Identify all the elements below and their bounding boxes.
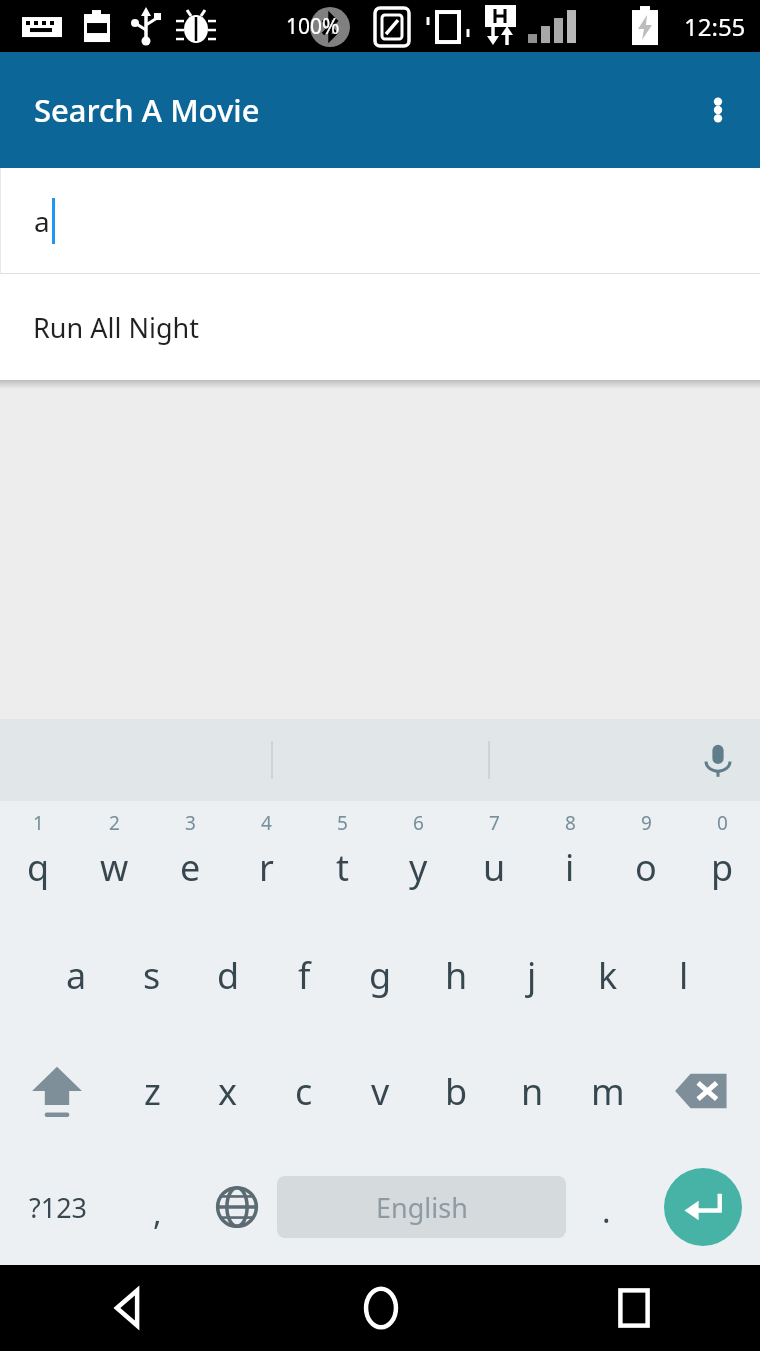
staticText: 6 (413, 810, 424, 836)
staticText: x (218, 1067, 238, 1116)
staticText: e (180, 843, 201, 892)
staticText: t (336, 843, 349, 892)
staticText: Search A Movie (34, 89, 260, 131)
button[interactable]: , (117, 1149, 197, 1265)
button[interactable]: ?123 (0, 1149, 117, 1265)
staticText: n (521, 1067, 544, 1116)
staticText: s (143, 951, 161, 1000)
staticText: a (66, 951, 87, 1000)
button[interactable]: Run All Night (0, 274, 760, 380)
staticText: l (679, 951, 689, 1000)
button[interactable]: English (277, 1176, 566, 1238)
button[interactable]: . (566, 1149, 646, 1265)
button[interactable]: k (570, 917, 646, 1033)
staticText: c (295, 1067, 313, 1116)
staticText: o (635, 843, 657, 892)
button[interactable]: d (190, 917, 266, 1033)
staticText: b (445, 1067, 468, 1116)
button[interactable]: g (342, 917, 418, 1033)
button[interactable]: j (494, 917, 570, 1033)
button[interactable]: m (570, 1033, 646, 1149)
staticText: f (298, 951, 311, 1000)
button[interactable]: Enter (664, 1168, 742, 1246)
button[interactable]: Shift (0, 1033, 114, 1149)
button[interactable]: 5 (304, 801, 380, 917)
staticText: v (371, 1067, 390, 1116)
button[interactable]: 3 (152, 801, 228, 917)
staticText: a (34, 202, 50, 240)
staticText: . (602, 1189, 611, 1233)
staticText: , (153, 1191, 162, 1235)
staticText: p (711, 843, 734, 892)
staticText: q (27, 843, 50, 892)
staticText: English (376, 1189, 468, 1226)
button[interactable]: a (0, 168, 760, 274)
staticText: 12:55 (684, 10, 746, 43)
staticText: z (144, 1067, 161, 1116)
button[interactable]: n (494, 1033, 570, 1149)
button[interactable]: c (266, 1033, 342, 1149)
button[interactable]: 4 (228, 801, 304, 917)
button[interactable]: 0 (684, 801, 760, 917)
button[interactable]: 7 (456, 801, 532, 917)
button[interactable]: s (114, 917, 190, 1033)
staticText: 5 (337, 810, 348, 836)
button[interactable]: 1 (0, 801, 76, 917)
button[interactable]: v (342, 1033, 418, 1149)
button[interactable]: f (266, 917, 342, 1033)
staticText: m (591, 1067, 625, 1116)
staticText: ?123 (29, 1189, 88, 1226)
button[interactable]: Home (254, 1265, 507, 1351)
staticText: 7 (489, 810, 500, 836)
button[interactable]: x (190, 1033, 266, 1149)
button[interactable]: 8 (532, 801, 608, 917)
button[interactable]: 2 (76, 801, 152, 917)
staticText: h (445, 951, 468, 1000)
staticText: 9 (641, 810, 652, 836)
staticText: 1 (33, 810, 44, 836)
staticText: 2 (109, 810, 120, 836)
staticText: g (369, 951, 392, 1000)
staticText: k (598, 951, 618, 1000)
button[interactable]: Voice input (690, 732, 746, 788)
staticText: Run All Night (33, 309, 199, 346)
button[interactable]: 6 (380, 801, 456, 917)
button[interactable]: Recent apps (507, 1265, 760, 1351)
staticText: u (483, 843, 506, 892)
button[interactable]: Back (0, 1265, 254, 1351)
button[interactable]: Backspace (646, 1033, 760, 1149)
staticText: i (565, 843, 575, 892)
staticText: w (100, 843, 129, 892)
button[interactable]: l (646, 917, 722, 1033)
button[interactable]: 9 (608, 801, 684, 917)
staticText: d (217, 951, 240, 1000)
staticText: r (259, 843, 274, 892)
button[interactable]: Change language (197, 1149, 277, 1265)
staticText: 0 (717, 810, 728, 836)
staticText: j (527, 951, 537, 1000)
button[interactable]: a (38, 917, 114, 1033)
button[interactable]: b (418, 1033, 494, 1149)
staticText: 100% (286, 12, 340, 41)
staticText: 8 (565, 810, 576, 836)
button[interactable]: More options (686, 78, 750, 142)
staticText: y (409, 843, 428, 892)
button[interactable]: z (114, 1033, 190, 1149)
staticText: 3 (185, 810, 196, 836)
staticText: 4 (261, 810, 272, 836)
button[interactable]: h (418, 917, 494, 1033)
